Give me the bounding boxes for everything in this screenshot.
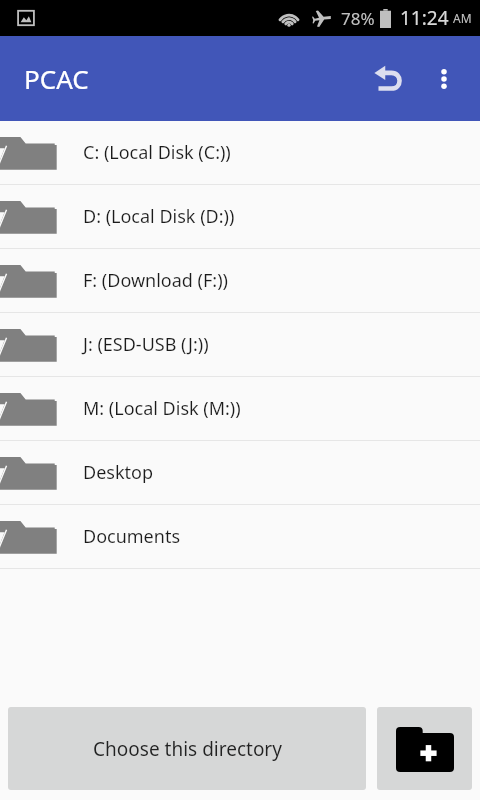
staticText: C: (Local Disk (C:)) bbox=[83, 140, 231, 165]
button[interactable]: Choose this directory bbox=[8, 707, 366, 790]
staticText: 11:24 bbox=[400, 5, 449, 31]
button[interactable]: Undo bbox=[360, 51, 416, 107]
staticText: M: (Local Disk (M:)) bbox=[83, 396, 241, 421]
button[interactable]: F: (Download (F:)) bbox=[0, 249, 480, 313]
staticText: Desktop bbox=[83, 460, 153, 485]
button[interactable]: More options bbox=[416, 51, 472, 107]
button[interactable]: C: (Local Disk (C:)) bbox=[0, 121, 480, 185]
staticText: Documents bbox=[83, 524, 181, 549]
staticText: PCAC bbox=[24, 61, 89, 96]
button[interactable]: D: (Local Disk (D:)) bbox=[0, 185, 480, 249]
staticText: F: (Download (F:)) bbox=[83, 268, 228, 293]
staticText: D: (Local Disk (D:)) bbox=[83, 204, 235, 229]
button[interactable]: Documents bbox=[0, 505, 480, 569]
staticText: J: (ESD-USB (J:)) bbox=[83, 332, 209, 357]
button[interactable]: J: (ESD-USB (J:)) bbox=[0, 313, 480, 377]
staticText: AM bbox=[453, 10, 472, 26]
staticText: Choose this directory bbox=[93, 736, 282, 762]
button[interactable]: Desktop bbox=[0, 441, 480, 505]
button[interactable]: Create new folder bbox=[377, 707, 472, 790]
button[interactable]: M: (Local Disk (M:)) bbox=[0, 377, 480, 441]
staticText: 78% bbox=[341, 7, 375, 30]
